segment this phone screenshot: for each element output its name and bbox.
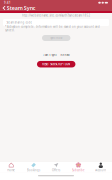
staticText: Steam Sync (7, 4, 36, 12)
staticText: Steam sharing code (6, 21, 32, 24)
staticText: * Activation complete. Information will … (5, 25, 100, 32)
staticText: Subscribe (72, 168, 85, 172)
staticText: http://websitename.site.com/auth?sync-st… (21, 14, 90, 17)
button[interactable]: Sync now (42, 35, 70, 41)
staticText: 9:41 (4, 1, 11, 4)
button[interactable]: Steam Sync (0, 5, 38, 11)
button[interactable]: Home (0, 162, 22, 173)
staticText: I can't sync Renew (42, 53, 69, 57)
staticText: RESET SUBSCRIPTION (42, 62, 70, 66)
button[interactable]: Account (90, 162, 112, 173)
staticText: Home (7, 168, 15, 172)
button[interactable]: Subscribe (67, 162, 90, 173)
button[interactable]: Bookings (22, 162, 45, 173)
staticText: Offers (52, 168, 60, 172)
staticText: Sync now (50, 36, 62, 40)
button[interactable]: Offers (45, 162, 67, 173)
staticText: Bookings (27, 168, 40, 172)
button[interactable]: RESET SUBSCRIPTION (37, 61, 75, 67)
staticText: Account (95, 168, 106, 172)
